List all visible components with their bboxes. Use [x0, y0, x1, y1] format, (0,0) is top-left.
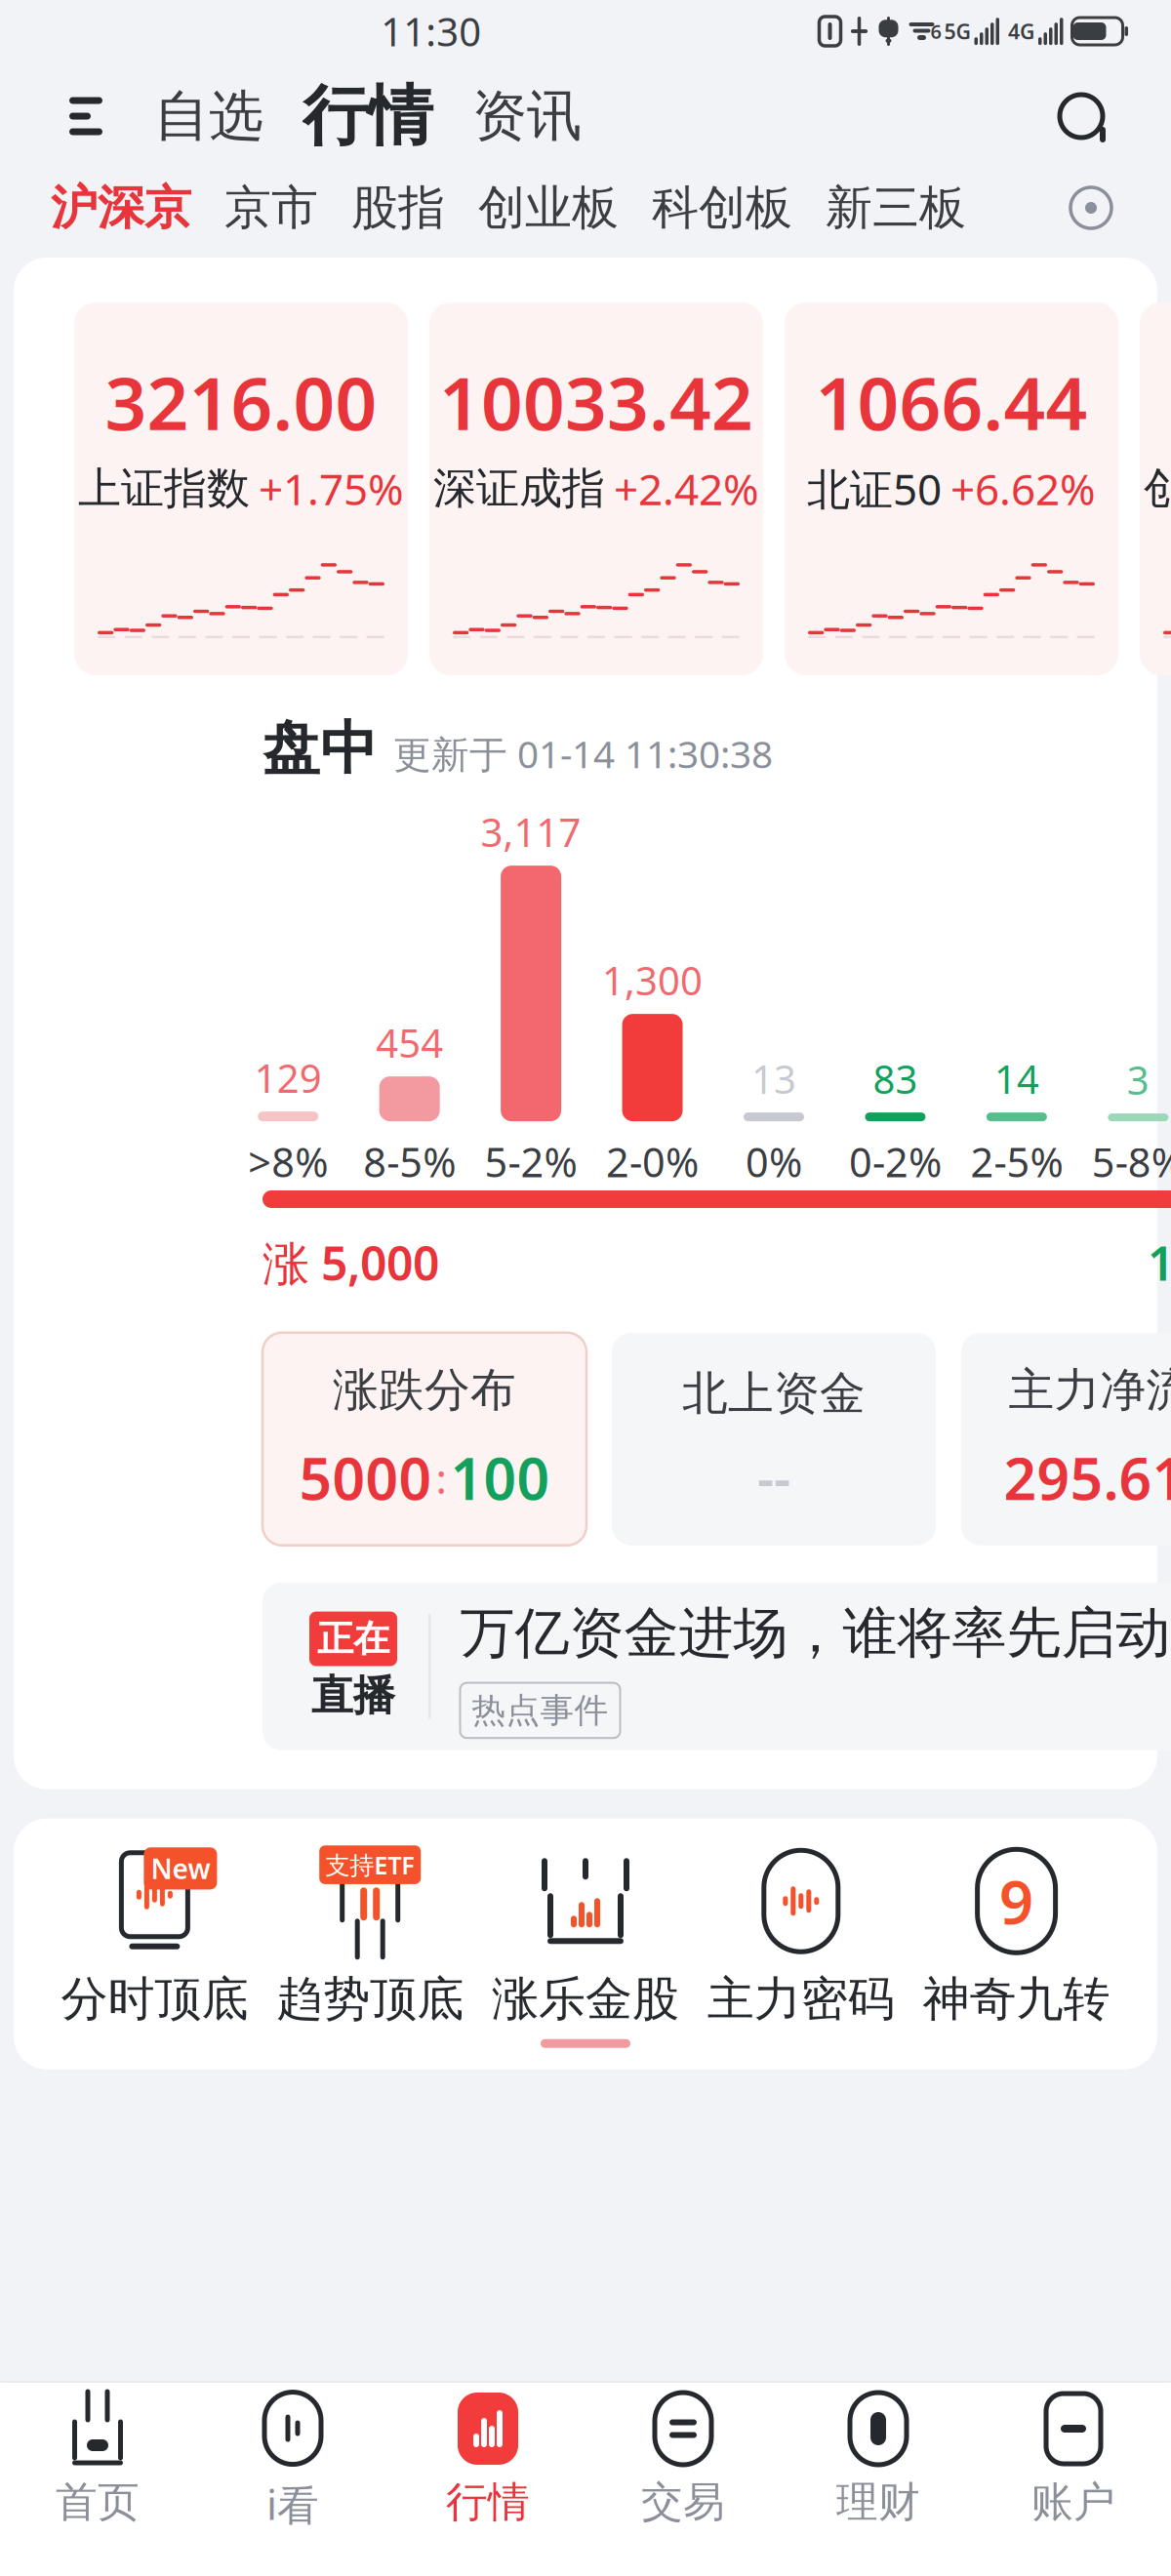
button[interactable]: 首页 [0, 2383, 195, 2539]
button[interactable]: 3216.00 [74, 302, 408, 675]
staticText: 北上资金 [682, 1366, 866, 1422]
button[interactable]: 交易 [585, 2383, 781, 2539]
staticText: 京市 [224, 179, 318, 237]
button[interactable]: 1066.44 [785, 302, 1118, 675]
staticText: 主力净流入 [1009, 1362, 1171, 1418]
staticText: 0% [746, 1135, 802, 1188]
staticText: 主力密码 [707, 1970, 895, 2028]
button[interactable]: 新三板 [826, 179, 966, 237]
button[interactable]: 涨乐金股 [478, 1844, 693, 2029]
staticText: 北证50 [807, 460, 942, 517]
staticText: 13 [751, 1053, 796, 1105]
staticText: 1,300 [602, 954, 703, 1006]
staticText: 2-0% [606, 1135, 699, 1188]
staticText: 5-2% [485, 1135, 577, 1188]
staticText: 创业板 [478, 179, 619, 237]
button[interactable]: 趋势顶底 [262, 1844, 478, 2029]
staticText: 热点事件 [472, 1690, 608, 1731]
staticText: 83 [873, 1053, 918, 1105]
staticText: 神奇九转 [923, 1970, 1110, 2028]
staticText: 涨 5,000 [262, 1231, 439, 1294]
staticText: +2.42% [614, 460, 759, 517]
staticText: 盘中 [262, 713, 378, 784]
staticText: -- [757, 1443, 790, 1512]
staticText: +6.62% [950, 460, 1096, 517]
staticText: 2-5% [970, 1135, 1063, 1188]
staticText: 100 [450, 1440, 550, 1516]
button[interactable]: 创业板 [478, 179, 619, 237]
button[interactable]: 沪深京 [51, 179, 191, 237]
staticText: 自选 [154, 83, 263, 150]
button[interactable]: 行情 [295, 77, 441, 155]
staticText: 3 [1127, 1054, 1149, 1106]
button[interactable]: 10033.42 [429, 302, 763, 675]
staticText: 理财 [836, 2476, 920, 2528]
staticText: 新三板 [826, 179, 966, 237]
staticText: 趋势顶底 [276, 1970, 464, 2028]
staticText: 5-8% [1092, 1135, 1171, 1188]
button[interactable]: 盘中 [202, 716, 1171, 810]
button[interactable]: 资讯 [464, 77, 589, 155]
staticText: 更新于 01-14 11:30:38 [393, 729, 773, 779]
staticText: 分时顶底 [61, 1970, 248, 2028]
staticText: >8% [248, 1135, 328, 1188]
staticText: 上证指数 [78, 462, 250, 515]
staticText: 9 [999, 1861, 1034, 1941]
staticText: 4G [1008, 17, 1034, 45]
staticText: 股指 [351, 179, 445, 237]
staticText: 3,117 [481, 806, 581, 858]
button[interactable]: 北上资金 [612, 1333, 936, 1545]
staticText: 涨跌分布 [333, 1362, 516, 1418]
staticText: 支持ETF [325, 1848, 415, 1881]
button[interactable]: 股指 [351, 179, 445, 237]
button[interactable]: 神奇九转 [909, 1844, 1124, 2029]
button[interactable]: 2544.10 [1140, 302, 1171, 675]
button[interactable]: 京市 [224, 179, 318, 237]
staticText: 5000 [299, 1440, 432, 1516]
button[interactable]: Customize [1062, 179, 1120, 237]
staticText: 深证成指 [433, 462, 605, 515]
staticText: 14 [994, 1053, 1039, 1105]
staticText: 直播 [311, 1670, 395, 1721]
button[interactable]: 正在 [262, 1582, 1171, 1750]
staticText: 首页 [56, 2476, 140, 2528]
staticText: 100 跌 [1148, 1231, 1171, 1294]
staticText: 沪深京 [51, 179, 191, 237]
staticText: 6 [930, 18, 941, 44]
staticText: 资讯 [472, 83, 582, 150]
staticText: New [151, 1850, 210, 1887]
button[interactable]: 主力净流入 [961, 1333, 1171, 1545]
staticText: 创业板指 [1144, 462, 1171, 515]
button[interactable]: Menu [51, 77, 121, 155]
staticText: 0-2% [849, 1135, 942, 1188]
button[interactable]: 涨跌分布 [262, 1333, 586, 1545]
staticText: 295.61亿 [1004, 1440, 1171, 1516]
button[interactable]: 分时顶底 [47, 1844, 262, 2029]
button[interactable]: 理财 [781, 2383, 976, 2539]
button[interactable]: Search [1042, 77, 1120, 155]
staticText: 行情 [446, 2476, 530, 2528]
staticText: 1066.44 [815, 353, 1088, 450]
staticText: 5G [944, 17, 970, 45]
staticText: 3216.00 [105, 353, 377, 450]
staticText: : [436, 1450, 446, 1505]
staticText: i看 [266, 2476, 319, 2532]
staticText: 454 [376, 1017, 443, 1069]
staticText: 129 [254, 1052, 322, 1104]
staticText: 万亿资金进场，谁将率先启动? [460, 1595, 1171, 1667]
button[interactable]: i看 [195, 2383, 390, 2539]
staticText: 科创板 [652, 179, 792, 237]
button[interactable]: 行情 [390, 2383, 585, 2539]
button[interactable]: 自选 [146, 77, 271, 155]
staticText: 涨乐金股 [492, 1970, 679, 2028]
staticText: 账户 [1031, 2476, 1115, 2528]
button[interactable]: 科创板 [652, 179, 792, 237]
staticText: +1.75% [259, 460, 404, 517]
staticText: 正在 [317, 1616, 389, 1661]
staticText: 8-5% [363, 1135, 456, 1188]
staticText: 10033.42 [439, 353, 753, 450]
staticText: 行情 [303, 76, 433, 156]
button[interactable]: 账户 [976, 2383, 1171, 2539]
button[interactable]: 主力密码 [693, 1844, 909, 2029]
staticText: 11:30 [381, 5, 481, 57]
